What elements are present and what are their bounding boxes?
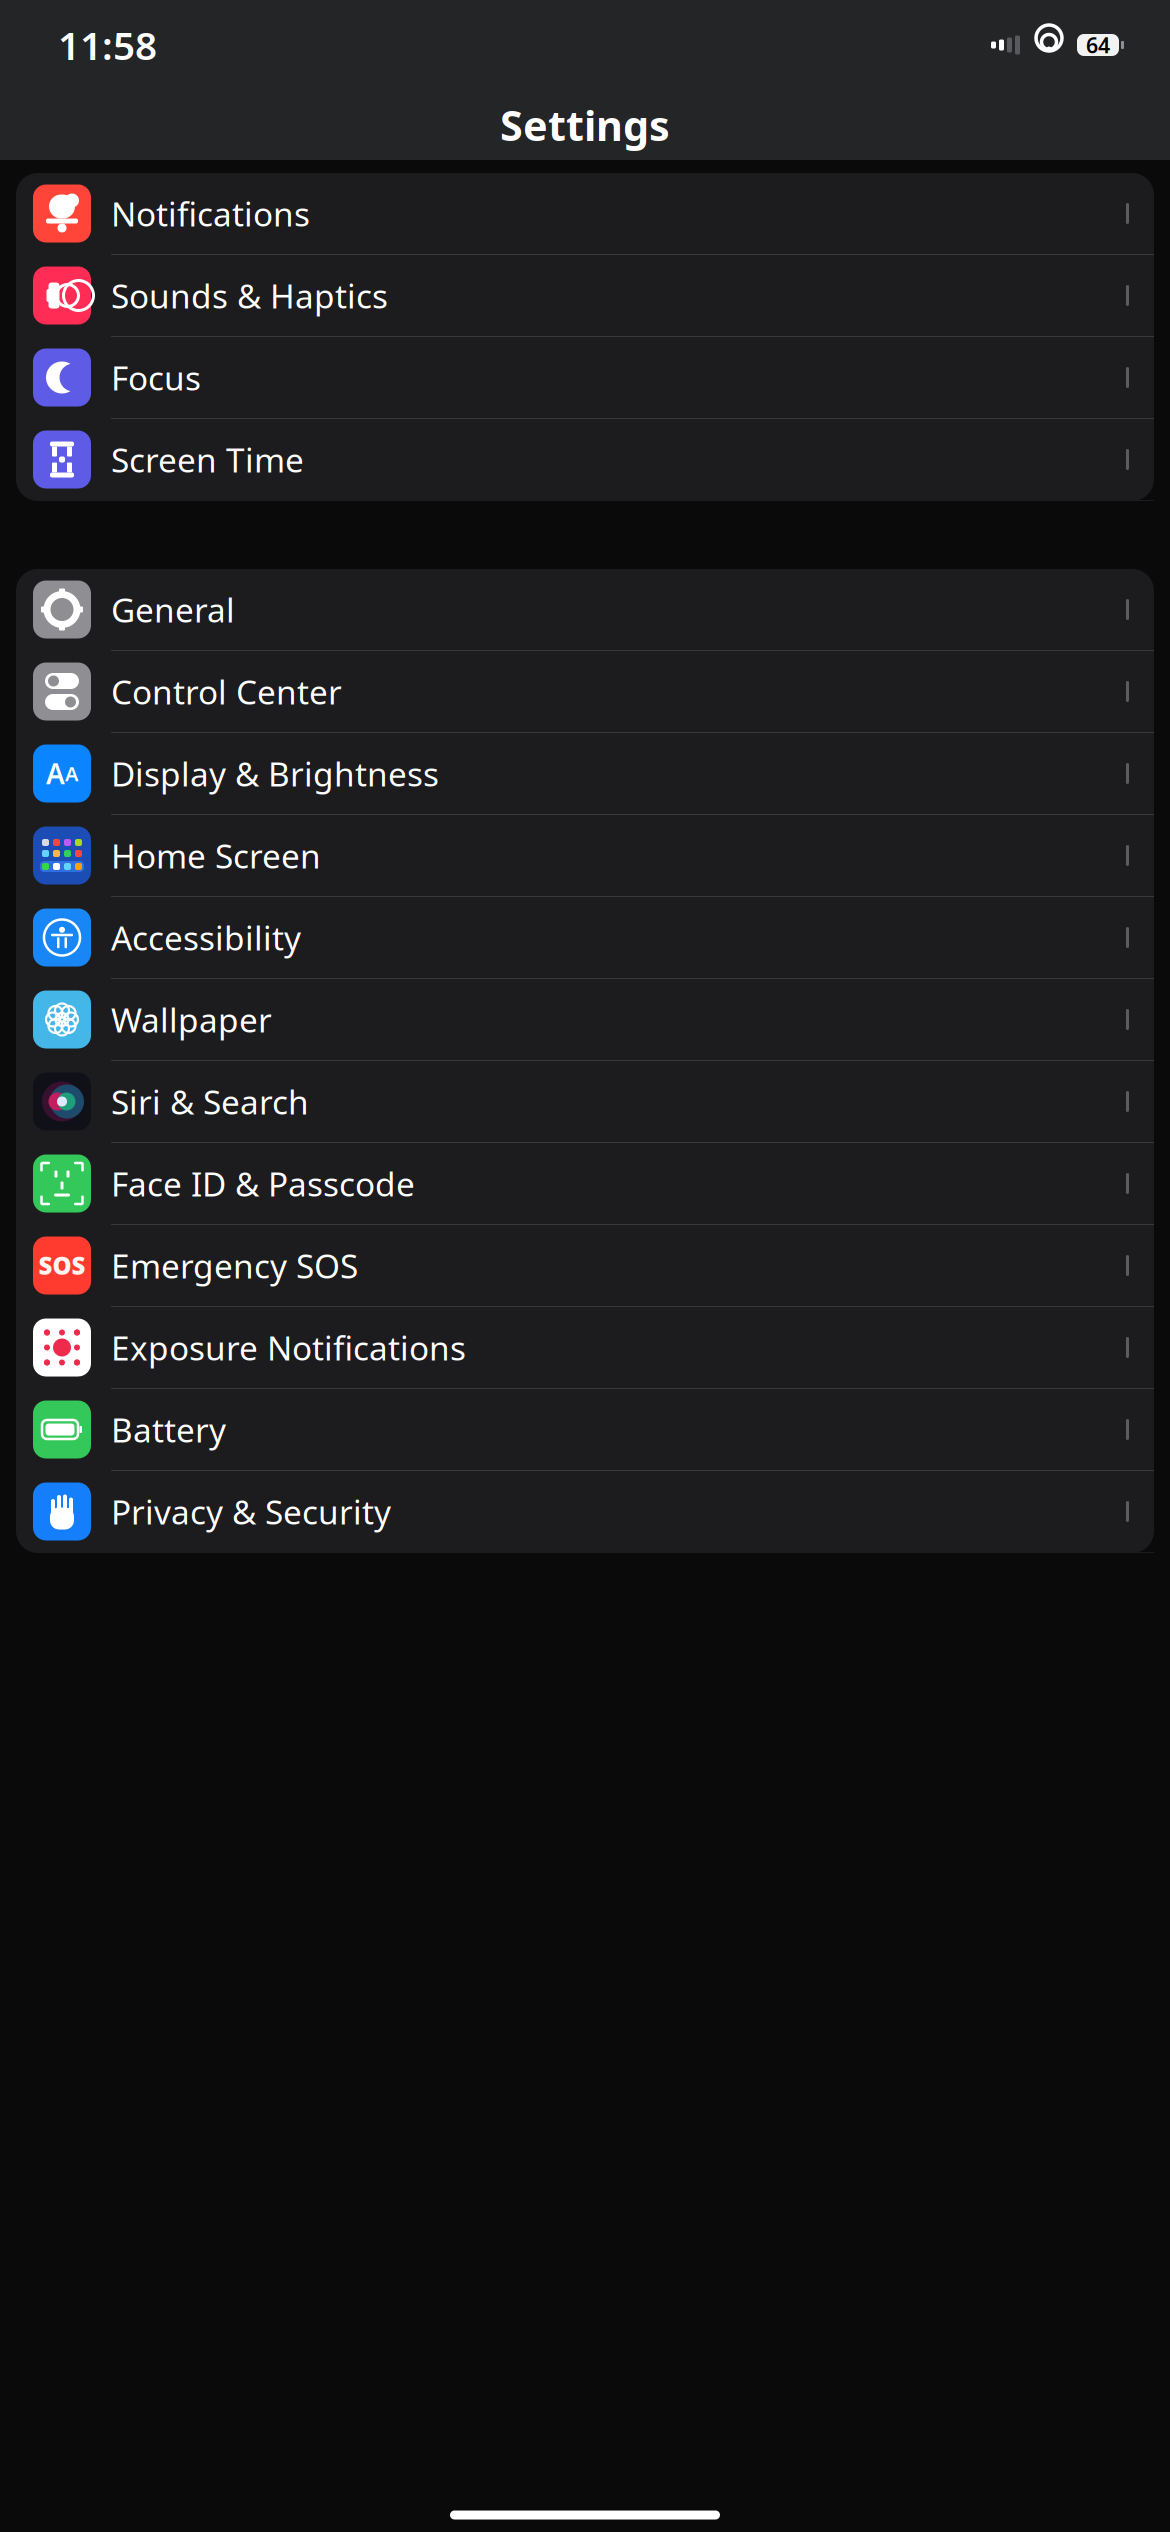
staticText: A [65,760,78,787]
staticText: SOS [38,1250,85,1281]
staticText: Control Center [111,669,342,714]
staticText: Accessibility [111,915,301,960]
button[interactable]: Exposure Notifications [16,1307,1154,1389]
button[interactable]: Home Screen [16,815,1154,897]
staticText: Screen Time [111,437,304,482]
button[interactable]: Screen Time [16,419,1154,501]
staticText: Sounds & Haptics [111,273,388,318]
staticText: Settings [500,98,670,152]
staticText: Privacy & Security [111,1489,391,1534]
staticText: 11:58 [58,19,157,71]
button[interactable]: A [16,733,1154,815]
button[interactable]: Control Center [16,651,1154,733]
button[interactable]: Face ID & Passcode [16,1143,1154,1225]
button[interactable]: Sounds & Haptics [16,255,1154,337]
button[interactable]: General [16,569,1154,651]
staticText: Emergency SOS [111,1243,358,1288]
staticText: Notifications [111,191,310,236]
button[interactable]: Settings [0,90,1170,160]
button[interactable]: Privacy & Security [16,1471,1154,1553]
button[interactable]: Battery [16,1389,1154,1471]
staticText: Home Screen [111,833,321,878]
staticText: Siri & Search [111,1079,309,1124]
button[interactable]: Notifications [16,173,1154,255]
staticText: Exposure Notifications [111,1325,466,1370]
staticText: A [46,755,65,792]
staticText: General [111,587,235,632]
staticText: Focus [111,355,201,400]
staticText: Battery [111,1407,226,1452]
staticText: Wallpaper [111,997,272,1042]
button[interactable]: Siri & Search [16,1061,1154,1143]
staticText: Face ID & Passcode [111,1161,415,1206]
button[interactable]: Focus [16,337,1154,419]
staticText: 64 [1086,31,1110,59]
button[interactable]: SOS [16,1225,1154,1307]
staticText: Display & Brightness [111,751,439,796]
button[interactable]: Accessibility [16,897,1154,979]
button[interactable]: Wallpaper [16,979,1154,1061]
